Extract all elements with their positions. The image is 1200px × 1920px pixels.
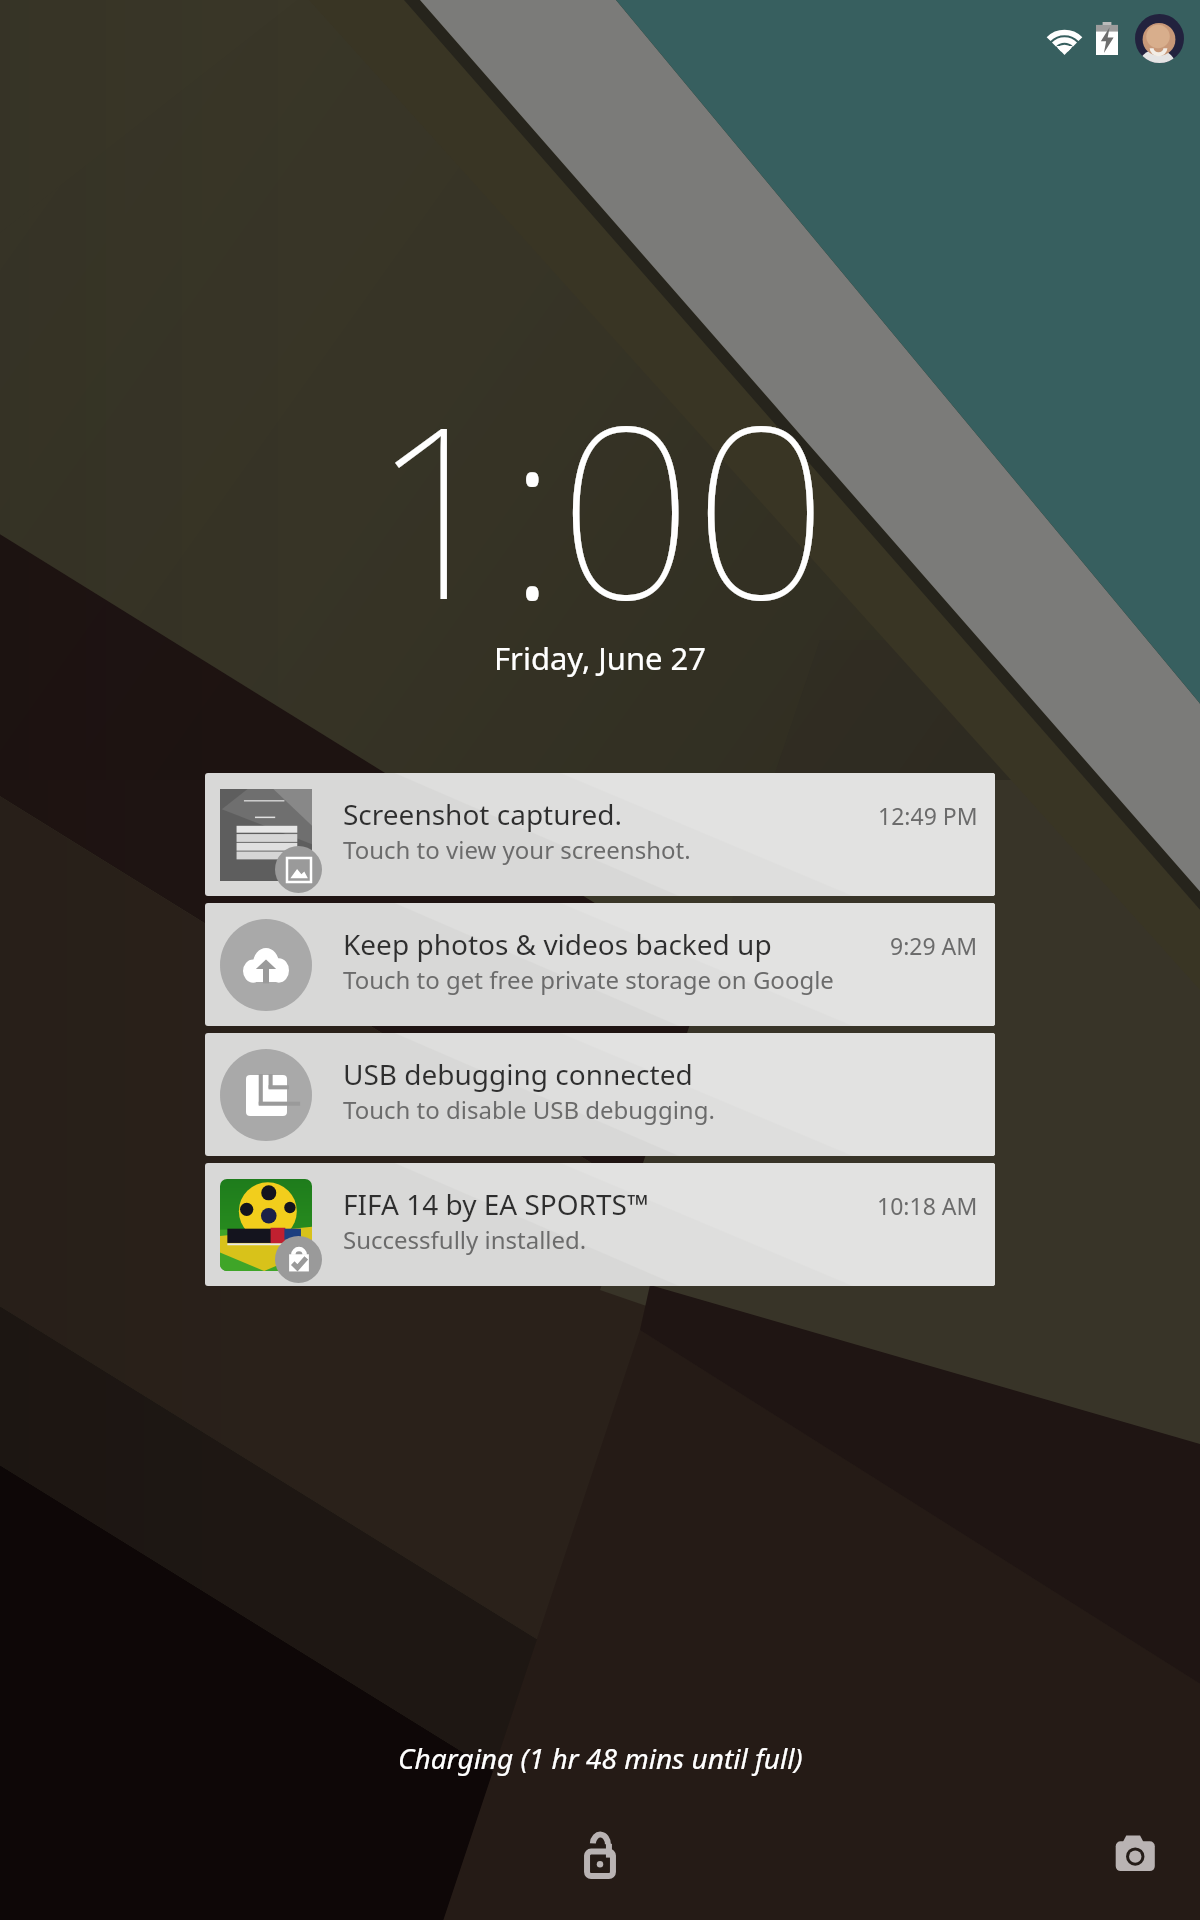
staticText: Keep photos & videos backed up [343,925,772,963]
staticText: Touch to get free private storage on Goo… [343,963,834,996]
staticText: 10:18 AM [877,1190,978,1221]
staticText: Screenshot captured. [343,795,623,833]
staticText: FIFA 14 by EA SPORTS™ [343,1185,649,1223]
staticText: USB debugging connected [343,1055,693,1093]
staticText: Touch to view your screenshot. [343,833,691,866]
button[interactable]: Switch user [1135,14,1184,63]
button[interactable]: Unlock [556,1804,644,1892]
staticText: 12:49 PM [878,800,978,831]
button[interactable]: FIFA 14 by EA SPORTS™ [205,1163,995,1286]
staticText: Charging (1 hr 48 mins until full) [398,1739,803,1777]
button[interactable]: USB debugging connected [205,1033,995,1156]
button[interactable]: Camera [1081,1801,1169,1889]
staticText: 1:00 [371,346,829,669]
button[interactable]: Screenshot captured. [205,773,995,896]
staticText: Friday, June 27 [494,637,707,679]
staticText: 9:29 AM [890,930,978,961]
button[interactable]: Keep photos & videos backed up [205,903,995,1026]
staticText: Touch to disable USB debugging. [343,1093,715,1126]
staticText: Successfully installed. [343,1223,587,1256]
